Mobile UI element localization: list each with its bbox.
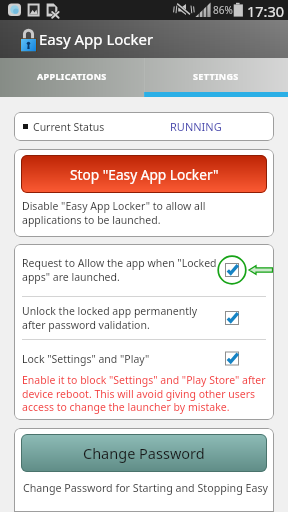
button[interactable]: SETTINGS	[144, 58, 288, 97]
button[interactable]: Stop "Easy App Locker"	[21, 155, 267, 193]
staticText: Stop "Easy App Locker"	[70, 165, 219, 184]
staticText: 17:30	[247, 1, 285, 21]
staticText: 86%	[213, 3, 233, 17]
staticText: RUNNING	[170, 119, 222, 134]
staticText: APPLICATIONS	[37, 70, 107, 82]
staticText: Unlock the locked app permanently after …	[22, 304, 227, 332]
staticText: Change Password	[83, 443, 205, 463]
button[interactable]: Request to Allow the app when "Locked ap…	[14, 244, 274, 296]
staticText: Lock "Settings" and "Play"	[22, 352, 227, 366]
button[interactable]: Lock "Settings" and "Play"	[14, 340, 274, 377]
button[interactable]: Unlock the locked app permanently after …	[14, 297, 274, 339]
other: App icon	[20, 28, 37, 52]
staticText: Request to Allow the app when "Locked ap…	[22, 256, 227, 284]
button[interactable]: Change Password	[21, 434, 267, 472]
staticText: Enable it to block "Settings" and "Play …	[22, 373, 266, 414]
staticText: Easy App Locker	[39, 29, 154, 49]
staticText: Change Password for Starting and Stoppin…	[23, 481, 269, 496]
staticText: Disable "Easy App Locker" to allow all a…	[22, 199, 206, 227]
staticText: SETTINGS	[193, 70, 239, 82]
staticText: Current Status	[33, 120, 105, 134]
button[interactable]: APPLICATIONS	[0, 58, 144, 97]
